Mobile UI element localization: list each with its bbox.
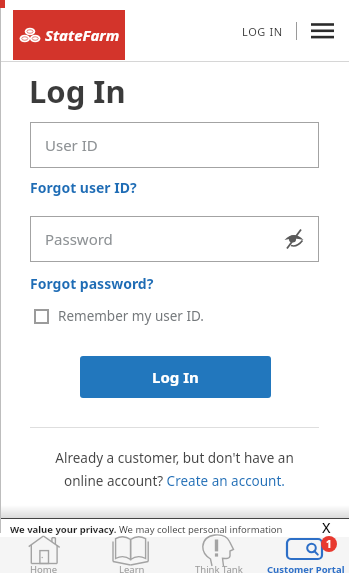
button[interactable]: Home — [0, 537, 88, 573]
staticText: X — [322, 518, 331, 537]
button[interactable] — [285, 537, 329, 561]
staticText: Customer Portal — [267, 563, 345, 573]
staticText: Already a customer, but don't have an — [0, 449, 349, 467]
staticText: StateFarm — [45, 25, 120, 45]
button[interactable]: Log In — [80, 356, 271, 398]
staticText: Log In — [152, 367, 199, 387]
button[interactable]: User ID — [30, 122, 319, 168]
staticText: Home — [30, 563, 58, 573]
staticText: Think Tank — [195, 563, 243, 573]
button[interactable]: Remember my user ID. — [34, 307, 204, 325]
staticText: 1 — [326, 537, 332, 551]
button[interactable]: X — [322, 518, 331, 537]
staticText: Password — [45, 229, 113, 249]
button[interactable]: Forgot user ID? — [30, 178, 137, 197]
staticText: Learn — [119, 563, 145, 573]
staticText: Forgot password? — [30, 274, 154, 293]
button[interactable]: Think Tank — [175, 537, 262, 573]
button[interactable]: LOG IN — [242, 24, 283, 39]
staticText: Forgot user ID? — [30, 178, 137, 197]
staticText: Log In — [29, 70, 126, 112]
button[interactable] — [311, 23, 334, 39]
staticText: online account? Create an account. — [0, 472, 349, 490]
staticText: User ID — [45, 135, 98, 155]
button[interactable]: Password — [30, 216, 319, 262]
button[interactable]: online account? Create an account. — [0, 472, 349, 490]
staticText: LOG IN — [242, 24, 283, 39]
button[interactable]: Forgot password? — [30, 274, 154, 293]
button[interactable]: StateFarm — [13, 10, 125, 60]
staticText: Remember my user ID. — [58, 307, 204, 325]
staticText: We value your privacy. We may collect pe… — [10, 523, 310, 536]
button[interactable]: Learn — [88, 537, 175, 573]
button[interactable]: Customer Portal — [262, 537, 349, 573]
